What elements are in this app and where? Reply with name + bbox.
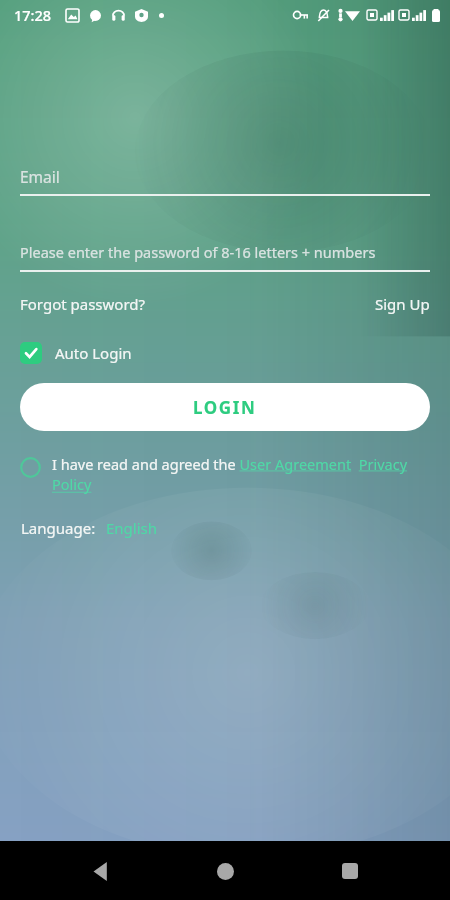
staticText: Auto Login <box>55 343 132 363</box>
button[interactable]: Email <box>20 158 430 194</box>
other: Agree to terms <box>20 457 41 478</box>
button[interactable]: Forgot password? <box>20 290 146 318</box>
button[interactable]: Agree to terms <box>20 454 430 495</box>
button[interactable]: Auto Login <box>20 339 142 367</box>
staticText: 17:28 <box>14 5 52 25</box>
button[interactable]: LOGIN <box>20 383 430 431</box>
staticText: LOGIN <box>193 396 257 419</box>
staticText: Please enter the password of 8-16 letter… <box>20 242 376 262</box>
staticText: English <box>106 518 158 538</box>
staticText: Email <box>20 166 60 187</box>
button[interactable]: Language: <box>20 515 159 541</box>
button[interactable]: Back <box>77 847 125 895</box>
staticText: Language: <box>21 518 96 538</box>
staticText: Sign Up <box>375 294 430 314</box>
button[interactable]: Sign Up <box>375 290 430 318</box>
button[interactable]: Home <box>201 847 249 895</box>
staticText: I have read and agreed the User Agreemen… <box>52 454 430 495</box>
button[interactable]: Recents <box>326 847 374 895</box>
button[interactable]: Please enter the password of 8-16 letter… <box>20 234 430 270</box>
staticText: Forgot password? <box>20 294 146 314</box>
